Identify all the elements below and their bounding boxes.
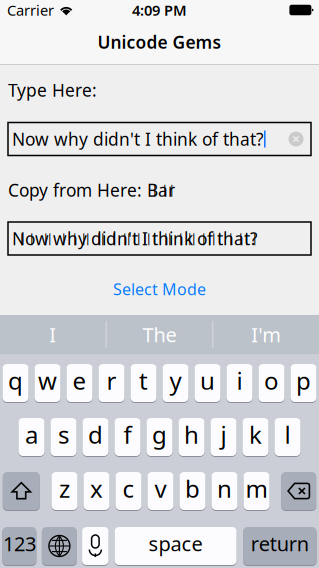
staticText: q [8,365,23,396]
staticText: The [142,321,176,348]
button[interactable]: w [34,364,60,402]
button[interactable]: f [114,418,140,456]
button[interactable]: s [50,418,76,456]
button[interactable]: space [115,527,237,565]
button[interactable]: z [51,472,77,510]
button[interactable]: p [290,364,316,402]
button[interactable]: t [130,364,156,402]
staticText: j [220,419,226,450]
button[interactable]: c [115,472,141,510]
button[interactable]: Delete [281,472,316,510]
staticText: Unicode Gems [97,30,221,53]
staticText: s [58,419,69,450]
button[interactable]: x [83,472,109,510]
staticText: a [25,419,38,450]
staticText: c [122,473,134,504]
staticText: b [185,473,200,504]
button[interactable]: a [18,418,44,456]
button[interactable]: o [258,364,284,402]
button[interactable]: return [243,527,317,565]
button[interactable]: u [194,364,220,402]
staticText: Type Here: [8,78,97,101]
staticText: d [88,419,103,450]
button[interactable]: r [98,364,124,402]
staticText: Copy from Here: B⃒a⃒r⃒ [8,178,175,201]
button[interactable]: Next keyboard [42,527,77,565]
staticText: p [296,365,311,396]
button[interactable]: I'm [213,315,319,354]
staticText: g [152,419,167,450]
button[interactable]: Shift [3,472,40,510]
staticText: o [264,365,279,396]
staticText: u [200,365,215,396]
staticText: t [139,365,148,396]
button[interactable]: h [178,418,204,456]
staticText: x [90,473,103,504]
button[interactable]: b [179,472,205,510]
staticText: return [251,530,309,557]
button[interactable]: g [146,418,172,456]
staticText: z [59,473,70,504]
staticText: space [149,530,203,557]
staticText: f [123,419,131,450]
button[interactable]: q [2,364,28,402]
staticText: w [38,365,57,396]
button[interactable]: j [210,418,236,456]
staticText: e [72,365,86,396]
button[interactable]: l [274,418,300,456]
button[interactable]: d [82,418,108,456]
button[interactable]: Select Mode [99,272,220,306]
button[interactable]: e [66,364,92,402]
staticText: m [245,473,267,504]
button[interactable]: I [0,315,106,354]
staticText: y [169,365,181,396]
staticText: Select Mode [113,278,206,300]
button[interactable]: Clear text [285,128,307,150]
staticText: h [184,419,199,450]
button[interactable]: v [147,472,173,510]
button[interactable]: 123 [2,527,36,565]
staticText: I [49,321,56,348]
staticText: Carrier [7,0,54,20]
button[interactable]: n [211,472,237,510]
staticText: r [106,365,116,396]
staticText: I'm [251,321,281,348]
button[interactable]: Dictation [82,527,109,565]
staticText: 4:09 PM [132,0,187,20]
staticText: v [154,473,166,504]
staticText: N⃒o⃒w⃒ ⃒w⃒h⃒y⃒ ⃒d⃒i⃒d⃒n⃒'⃒t⃒ ⃒I⃒ ⃒t⃒h⃒i⃒… [12,227,258,250]
staticText: i [236,365,242,396]
button[interactable]: y [162,364,188,402]
staticText: k [249,419,262,450]
button[interactable]: i [226,364,252,402]
button[interactable]: The [107,315,212,354]
staticText: n [217,473,232,504]
button[interactable]: m [243,472,269,510]
staticText: 123 [3,530,36,557]
button[interactable]: k [242,418,268,456]
staticText: l [284,419,290,450]
staticText: Now why didn't I think of that? [12,127,264,150]
